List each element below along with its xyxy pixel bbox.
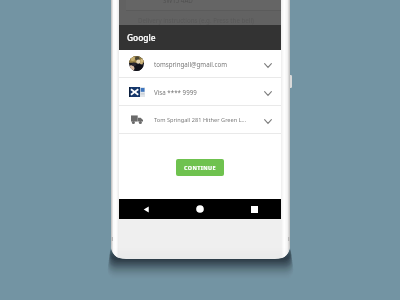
button[interactable]: Tom Springall 281 Hither Green L...	[119, 106, 281, 134]
button[interactable]: Home	[173, 199, 227, 219]
staticText: SW15 4AD	[163, 0, 193, 4]
staticText: Visa **** 9999	[154, 88, 254, 96]
button[interactable]: CONTINUE	[176, 159, 224, 176]
staticText: Google	[127, 32, 156, 43]
button[interactable]: tomspringall@gmail.com	[119, 50, 281, 78]
staticText: CONTINUE	[184, 164, 216, 171]
button[interactable]: Visa **** 9999	[119, 78, 281, 106]
button[interactable]: Recent apps	[227, 199, 281, 219]
staticText: Tom Springall 281 Hither Green L...	[154, 116, 254, 124]
staticText: tomspringall@gmail.com	[154, 60, 254, 68]
button[interactable]: Back	[119, 199, 173, 219]
